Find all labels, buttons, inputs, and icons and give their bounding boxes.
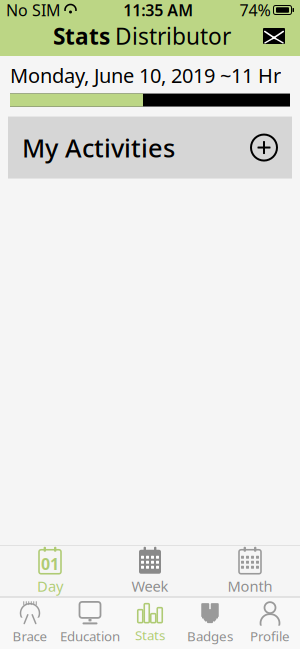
staticText: Education	[60, 627, 120, 645]
staticText: 11:35 AM	[123, 0, 193, 21]
staticText: Profile	[250, 627, 290, 645]
staticText: Day	[37, 576, 63, 596]
staticText: 01	[41, 553, 59, 574]
staticText: Stats	[53, 21, 110, 51]
button[interactable]: Profile	[240, 598, 300, 648]
button[interactable]: Stats	[120, 598, 180, 648]
staticText: Month	[227, 576, 272, 596]
button[interactable]: Badges	[180, 598, 240, 648]
staticText: Brace	[12, 627, 47, 645]
staticText: Week	[131, 576, 168, 596]
button[interactable]: Messages	[254, 21, 294, 51]
button[interactable]: Week	[100, 547, 200, 595]
staticText: Distributor	[115, 21, 231, 51]
staticText: Badges	[187, 627, 233, 645]
button[interactable]: Brace	[0, 598, 60, 648]
staticText: Monday, June 10, 2019 ~11 Hr	[10, 62, 281, 89]
button[interactable]: Month	[200, 547, 300, 595]
button[interactable]: My Activities	[8, 117, 292, 179]
staticText: My Activities	[22, 131, 175, 164]
staticText: 74%	[239, 0, 270, 21]
staticText: No SIM	[6, 0, 61, 21]
button[interactable]: 01	[0, 547, 100, 595]
button[interactable]: Education	[60, 598, 120, 648]
staticText: Stats	[135, 626, 165, 644]
